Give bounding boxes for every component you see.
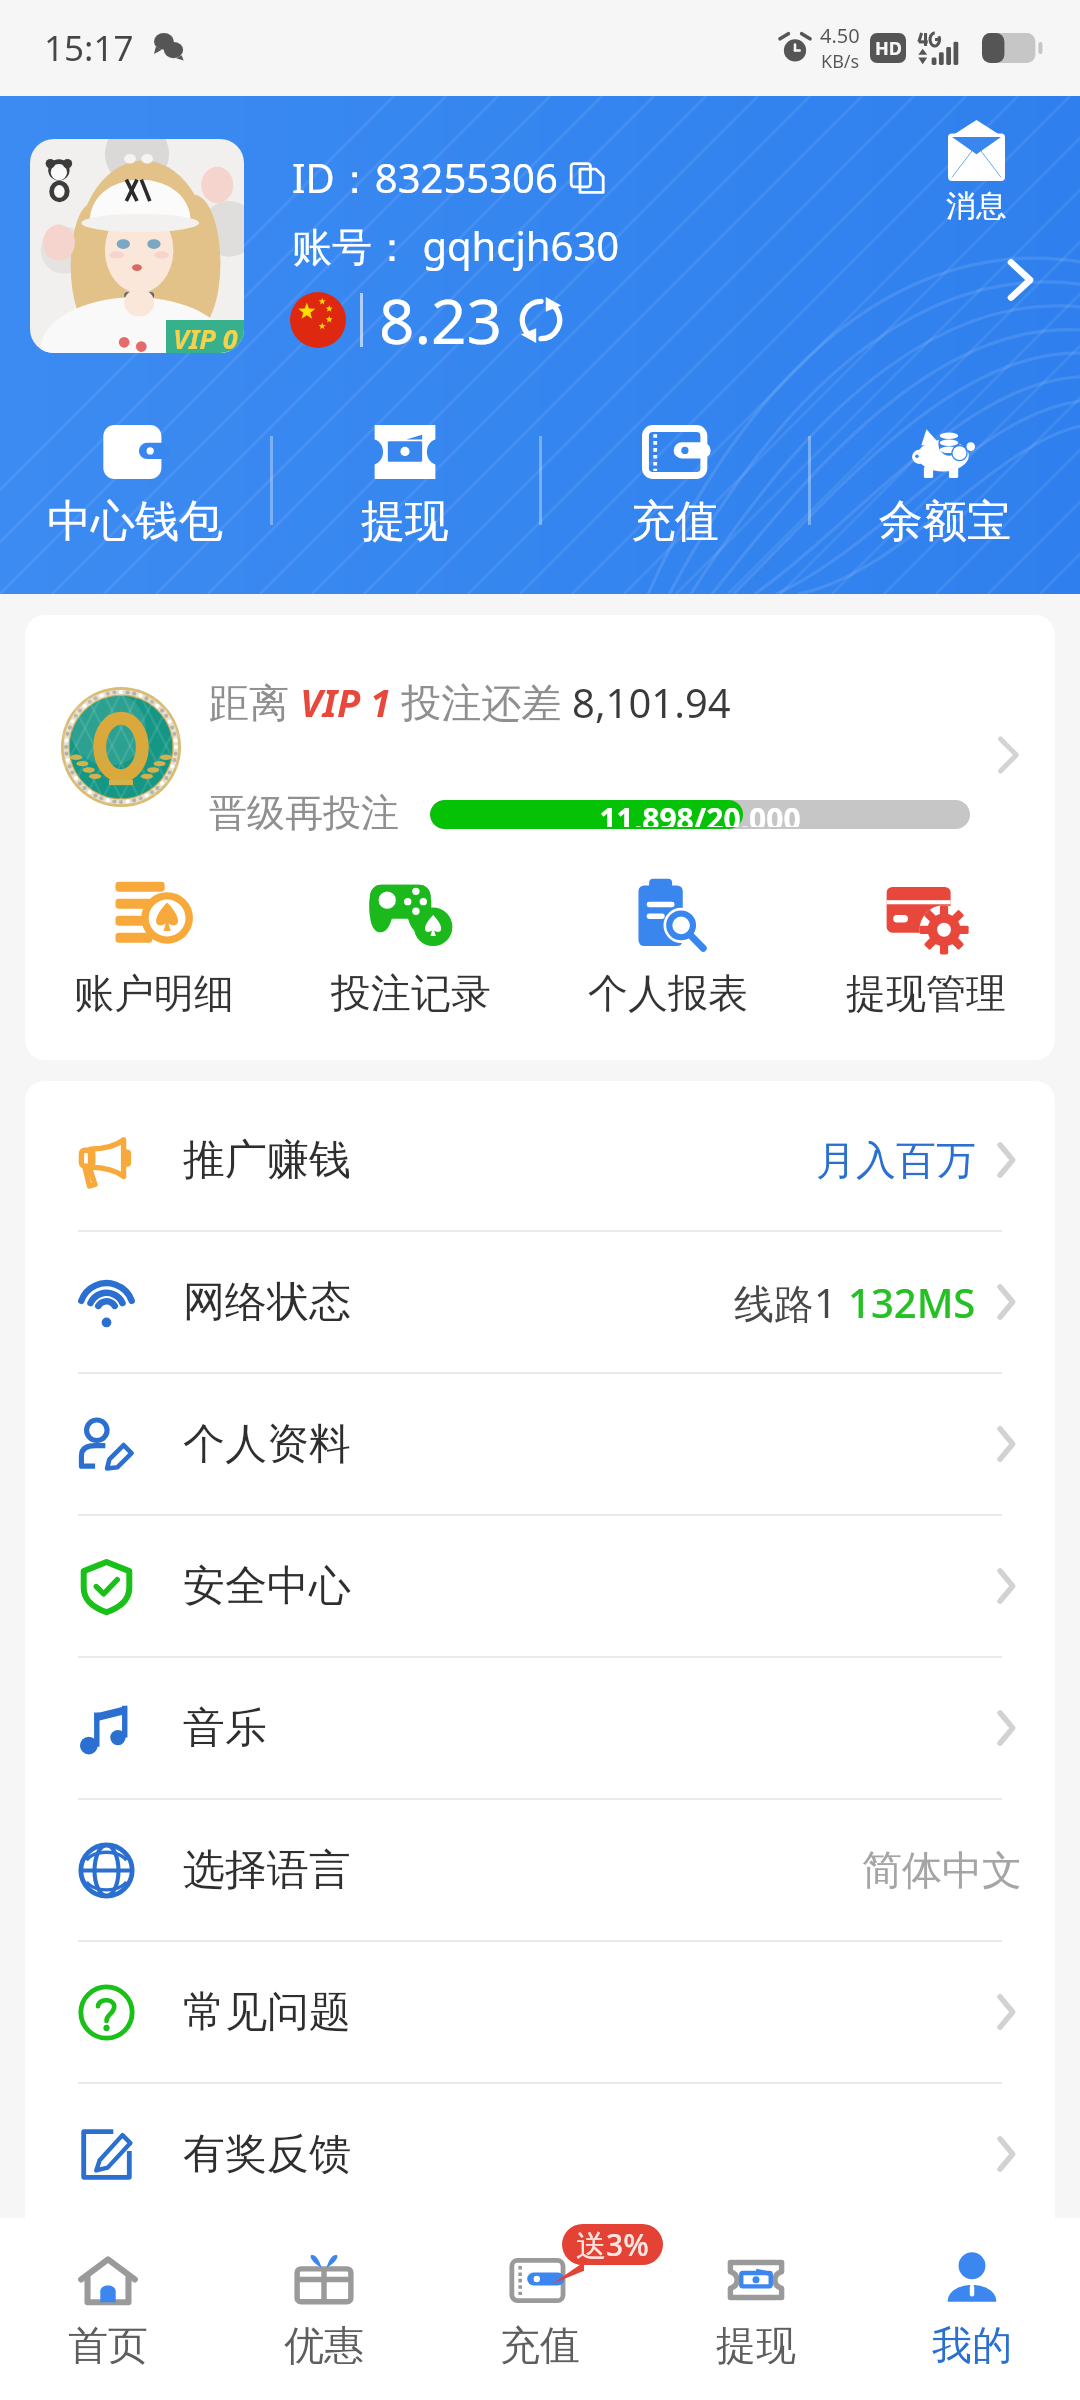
button[interactable]: Copy ID (568, 158, 608, 198)
button[interactable]: 安全中心 (25, 1516, 1055, 1656)
button[interactable]: 有奖反馈 (25, 2084, 1055, 2224)
button[interactable]: 账户明细 (25, 878, 282, 1018)
button[interactable]: 首页 (0, 2218, 216, 2400)
staticText: 安全中心 (183, 1560, 351, 1613)
button[interactable]: 个人资料 (25, 1374, 1055, 1514)
staticText: 我的 (932, 2320, 1012, 2370)
button[interactable]: Avatar (30, 139, 244, 353)
staticText: 首页 (68, 2320, 148, 2370)
staticText: 个人报表 (588, 968, 748, 1018)
button[interactable]: 优惠 (216, 2218, 432, 2400)
button[interactable]: 消息 (930, 120, 1022, 225)
button[interactable]: More (1002, 258, 1038, 302)
staticText: 15:17 (44, 24, 134, 72)
button[interactable]: 个人报表 (539, 878, 797, 1018)
staticText: 个人资料 (183, 1418, 351, 1471)
staticText: 账号： gqhcjh630 (292, 218, 620, 273)
button[interactable]: 中心钱包 (0, 425, 270, 549)
staticText: 账户明细 (74, 968, 234, 1018)
staticText: 推广赚钱 (183, 1134, 351, 1187)
staticText: 送3% (576, 2224, 649, 2265)
button[interactable]: 音乐 (25, 1658, 1055, 1798)
staticText: 4.50 (820, 22, 860, 49)
staticText: 有奖反馈 (183, 2128, 351, 2181)
button[interactable]: 常见问题 (25, 1942, 1055, 2082)
button[interactable]: VIP progress (25, 615, 1055, 870)
button[interactable]: 充值 (432, 2218, 648, 2400)
staticText: 优惠 (284, 2320, 364, 2370)
button[interactable]: 网络状态 (25, 1232, 1055, 1372)
staticText: KB/s (821, 49, 860, 74)
staticText: VIP 1 (300, 676, 391, 728)
staticText: 晋级再投注 (209, 789, 399, 837)
staticText: 提现 (716, 2320, 796, 2370)
button[interactable]: Refresh balance (517, 296, 565, 344)
staticText: 网络状态 (183, 1276, 351, 1329)
button[interactable]: 推广赚钱 (25, 1090, 1055, 1230)
staticText: 中心钱包 (47, 494, 223, 549)
staticText: 音乐 (183, 1702, 267, 1755)
staticText: ID：83255306 (292, 150, 558, 205)
staticText: 提现管理 (846, 968, 1006, 1018)
button[interactable]: 余额宝 (810, 425, 1080, 549)
button[interactable]: 选择语言 (25, 1800, 1055, 1940)
button[interactable]: 提现管理 (797, 878, 1055, 1018)
button[interactable]: 提现 (648, 2218, 864, 2400)
button[interactable]: 充值 (540, 425, 810, 549)
staticText: 月入百万 (816, 1135, 976, 1185)
staticText: 简体中文 (862, 1845, 1022, 1895)
staticText: VIP 0 (173, 320, 238, 353)
staticText: 11,898/20,000 (430, 800, 970, 827)
staticText: 充值 (631, 494, 719, 549)
staticText: 投注记录 (331, 968, 491, 1018)
staticText: 投注还差 (391, 674, 572, 729)
staticText: 消息 (946, 187, 1006, 225)
staticText: 线路1 (734, 1275, 848, 1330)
button[interactable]: 我的 (864, 2218, 1080, 2400)
staticText: 余额宝 (879, 494, 1011, 549)
staticText: 提现 (361, 494, 449, 549)
staticText: 选择语言 (183, 1844, 351, 1897)
staticText: 常见问题 (183, 1986, 351, 2039)
staticText: 8,101.94 (572, 675, 731, 729)
button[interactable]: 投注记录 (282, 878, 539, 1018)
staticText: 充值 (500, 2320, 580, 2370)
staticText: 8.23 (379, 278, 503, 362)
staticText: 132MS (848, 1275, 976, 1329)
button[interactable]: 提现 (270, 425, 540, 549)
staticText: 距离 (209, 674, 300, 729)
staticText: HD (875, 36, 902, 61)
